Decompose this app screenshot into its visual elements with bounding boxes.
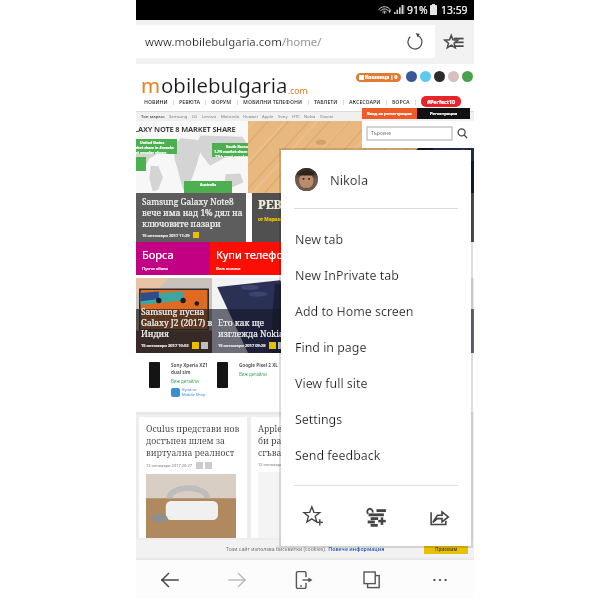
staticText: Huawei bbox=[243, 114, 258, 120]
staticText: most popular phone bbox=[136, 150, 167, 154]
staticText: МОБИЛНИ ТЕЛЕФОНИ bbox=[243, 98, 303, 105]
button[interactable]: LAXY NOTE 8 MARKET SHARE bbox=[136, 121, 248, 193]
staticText: Купи от bbox=[182, 387, 197, 392]
staticText: | bbox=[342, 98, 345, 105]
button[interactable]: Continue on PC bbox=[270, 560, 338, 599]
staticText: Samsung Galaxy Note8 bbox=[142, 196, 234, 207]
staticText: ФОРУМ bbox=[211, 98, 232, 105]
staticText: United States bbox=[140, 140, 165, 145]
staticText: Samsung bbox=[169, 114, 188, 120]
staticText: 15 октомври 2017 09:28 bbox=[218, 343, 266, 348]
staticText: /home/ bbox=[282, 34, 322, 50]
staticText: New InPrivate tab bbox=[295, 267, 399, 284]
button[interactable]: Add to Home screen bbox=[281, 293, 471, 329]
staticText: m bbox=[141, 71, 161, 99]
staticText: Motorola bbox=[221, 114, 239, 120]
staticText: ключовите пазари bbox=[142, 218, 221, 229]
button[interactable]: Forward bbox=[203, 560, 270, 599]
staticText: вече има над 1% дял на bbox=[142, 207, 243, 218]
staticText: New tab bbox=[295, 231, 344, 248]
button[interactable] bbox=[462, 71, 473, 82]
staticText: Търсене bbox=[371, 130, 391, 137]
button[interactable]: Nikola bbox=[295, 150, 471, 208]
button[interactable]: More bbox=[406, 560, 474, 599]
staticText: 91% bbox=[407, 3, 428, 17]
button[interactable]: Add to favorites bbox=[281, 486, 345, 546]
button[interactable]: Samsung Galaxy Note8 bbox=[136, 193, 246, 242]
staticText: View full site bbox=[295, 375, 368, 392]
staticText: Индия bbox=[141, 328, 170, 339]
button[interactable]: Борса bbox=[136, 242, 210, 275]
staticText: Add to Home screen bbox=[295, 303, 414, 320]
button[interactable]: Купи телефон bbox=[210, 242, 286, 275]
staticText: Settings bbox=[295, 411, 343, 428]
button[interactable]: Add to reading list bbox=[345, 486, 408, 546]
staticText: Lenovo bbox=[202, 114, 217, 120]
button[interactable] bbox=[420, 71, 431, 82]
button[interactable]: Google Pixel 2 XL bbox=[217, 362, 278, 388]
button[interactable]: Find in page bbox=[281, 329, 471, 365]
button[interactable]: Ето как ще bbox=[212, 278, 474, 353]
staticText: Виж детайли bbox=[171, 378, 199, 384]
staticText: 13:59 bbox=[441, 3, 468, 17]
button[interactable] bbox=[448, 71, 459, 82]
staticText: 15 октомври 2017 10:53 bbox=[141, 343, 189, 348]
staticText: Топ марки: bbox=[141, 114, 165, 120]
button[interactable]: View full site bbox=[281, 365, 471, 401]
button[interactable]: Send feedback bbox=[281, 437, 471, 473]
staticText: Samsung пусна bbox=[141, 306, 205, 317]
button[interactable]: Apple подготвя iPhone, bbox=[251, 417, 359, 538]
staticText: Борса bbox=[142, 247, 174, 262]
staticText: LG bbox=[192, 114, 198, 120]
button[interactable]: New tab bbox=[281, 221, 471, 257]
staticText: LAXY NOTE 8 MARKET SHARE bbox=[136, 124, 236, 134]
button[interactable]: Share bbox=[408, 486, 471, 546]
button[interactable]: Search bbox=[457, 128, 468, 139]
staticText: Кошница | 0 bbox=[365, 74, 398, 81]
staticText: | bbox=[204, 98, 207, 105]
staticText: obilebulgaria bbox=[161, 71, 288, 99]
staticText: Xiaomi bbox=[320, 114, 334, 120]
button[interactable]: Вход за регистрация bbox=[362, 108, 417, 119]
staticText: .com bbox=[288, 85, 308, 97]
staticText: 12 октомври 2017 20:03 bbox=[258, 462, 305, 467]
button[interactable]: Samsung пусна bbox=[136, 278, 212, 353]
staticText: БОРСА bbox=[392, 98, 410, 105]
button[interactable]: Sony Xperia XZ1 bbox=[149, 362, 208, 397]
staticText: ТАБЛЕТИ bbox=[314, 98, 338, 105]
staticText: Galaxy J2 (2017) в bbox=[141, 317, 212, 328]
staticText: #Perfect10 bbox=[427, 98, 455, 105]
button[interactable] bbox=[248, 121, 474, 193]
staticText: Пусни обява bbox=[142, 265, 169, 271]
staticText: Вход за регистрация bbox=[367, 111, 412, 117]
button[interactable] bbox=[434, 71, 445, 82]
staticText: Ето как ще bbox=[218, 317, 265, 328]
staticText: Mobile Shop bbox=[182, 392, 206, 397]
button[interactable]: Refresh bbox=[403, 30, 427, 54]
staticText: South Korea bbox=[226, 144, 248, 149]
staticText: виртуална реалност bbox=[146, 447, 235, 459]
staticText: 12 октомври 2017 20:27 bbox=[146, 463, 193, 468]
staticText: Този сайт използва бисквитки (cookies). bbox=[226, 545, 327, 552]
staticText: Регистрация bbox=[430, 111, 458, 117]
button[interactable]: Oculus представи нов bbox=[139, 417, 247, 538]
button[interactable]: Settings bbox=[281, 401, 471, 437]
staticText: Find in page bbox=[295, 339, 367, 356]
staticText: | bbox=[307, 98, 310, 105]
button[interactable]: Favorites bbox=[435, 25, 474, 58]
button[interactable]: Регистрация bbox=[417, 108, 470, 119]
staticText: достъпен шлем за bbox=[146, 435, 225, 447]
button[interactable]: Back bbox=[136, 560, 203, 599]
button[interactable]: РЕВЮ: bbox=[252, 193, 474, 242]
button[interactable]: Приемам bbox=[424, 543, 468, 554]
button[interactable]: New InPrivate tab bbox=[281, 257, 471, 293]
button[interactable]: Търсене bbox=[367, 127, 452, 140]
button[interactable] bbox=[406, 71, 417, 82]
button[interactable]: Кошница | 0 bbox=[356, 73, 401, 82]
staticText: Google Pixel 2 XL bbox=[239, 362, 278, 368]
staticText: Australia bbox=[200, 182, 217, 187]
staticText: Apple подготвя iPhone, bbox=[258, 423, 357, 435]
staticText: Купи телефон bbox=[216, 247, 286, 262]
button[interactable]: Tabs bbox=[338, 560, 406, 599]
button[interactable]: www.mobilebulgaria.com bbox=[136, 25, 435, 58]
